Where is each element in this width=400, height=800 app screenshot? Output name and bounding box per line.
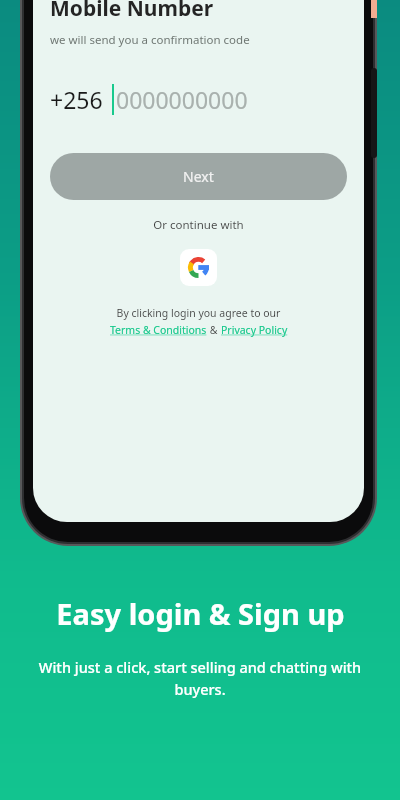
button[interactable]: Privacy Policy (221, 323, 288, 337)
button[interactable]: Continue with Google (180, 249, 217, 286)
staticText: Next (183, 167, 214, 186)
staticText: Privacy Policy (221, 323, 288, 337)
staticText: & (207, 323, 221, 337)
staticText: Terms & Conditions (110, 323, 207, 337)
staticText: +256 (50, 84, 103, 115)
staticText: By clicking login you agree to our (50, 306, 347, 320)
staticText: With just a click, start selling and cha… (30, 657, 370, 699)
staticText: Or continue with (50, 217, 347, 233)
button[interactable]: Terms & Conditions (110, 323, 207, 337)
staticText: Mobile Number (50, 0, 214, 23)
staticText: 0000000000 (116, 84, 248, 115)
button[interactable]: Next (50, 153, 347, 200)
staticText: Easy login & Sign up (56, 594, 345, 633)
staticText: we will send you a confirmation code (50, 32, 250, 48)
